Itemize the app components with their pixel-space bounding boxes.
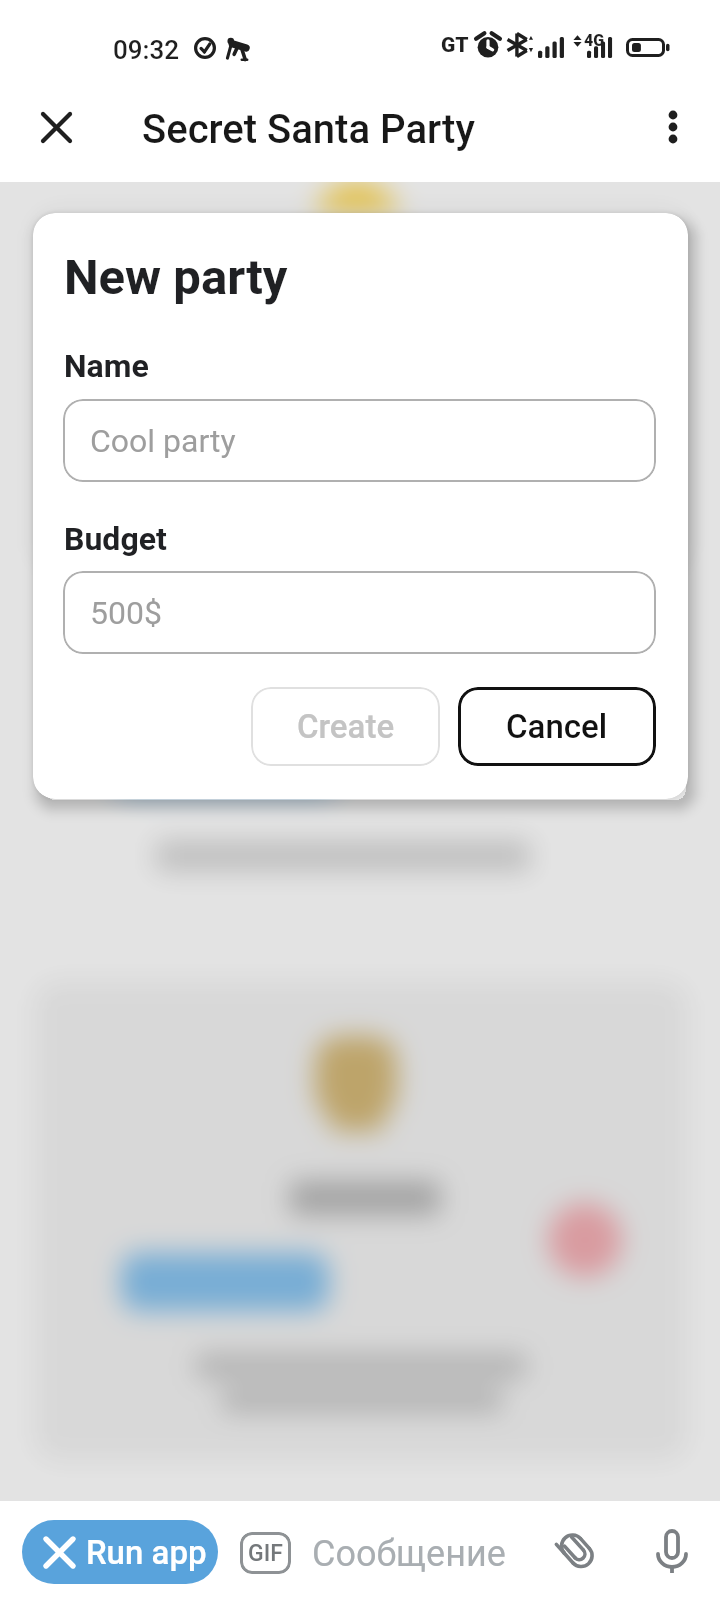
button[interactable]: Close xyxy=(24,95,88,159)
staticText: Name xyxy=(64,347,149,385)
staticText: GT xyxy=(441,33,469,58)
staticText: 4G xyxy=(584,31,605,50)
staticText: New party xyxy=(64,249,288,306)
button[interactable]: 500$ xyxy=(63,571,656,654)
staticText: Budget xyxy=(64,520,167,558)
staticText: 09:32 xyxy=(113,35,180,65)
staticText: Create xyxy=(297,707,395,746)
button[interactable]: Record voice message xyxy=(640,1519,704,1583)
button[interactable]: Cool party xyxy=(63,399,656,482)
staticText: 500$ xyxy=(90,594,162,632)
button[interactable]: Run app xyxy=(22,1520,218,1584)
staticText: Cancel xyxy=(506,707,608,746)
button[interactable]: More options xyxy=(641,95,705,159)
staticText: GIF xyxy=(248,1540,283,1567)
staticText: Run app xyxy=(86,1533,207,1572)
button[interactable]: Send GIF xyxy=(240,1532,291,1574)
staticText: Secret Santa Party xyxy=(142,106,475,153)
staticText: Сообщение xyxy=(312,1533,506,1575)
button[interactable]: Cancel xyxy=(458,687,656,766)
staticText: Cool party xyxy=(90,422,236,460)
button[interactable]: Create xyxy=(251,687,440,766)
button[interactable]: Attach file xyxy=(545,1519,609,1583)
